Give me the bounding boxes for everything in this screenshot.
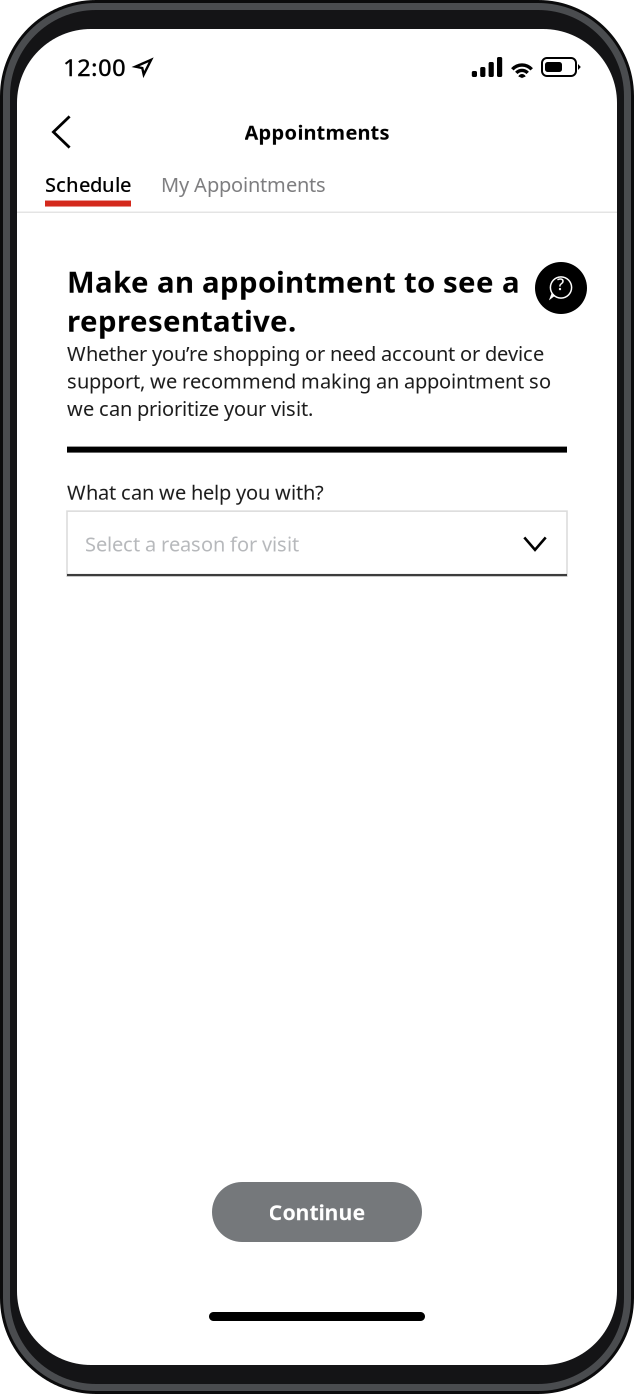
staticText: My Appointments [161,171,326,197]
button[interactable]: Back [17,104,93,160]
staticText: Schedule [45,171,131,197]
button[interactable]: My Appointments [161,171,326,206]
staticText: 12:00 [63,51,126,83]
staticText: Appointments [244,119,389,145]
button[interactable]: Help [535,262,587,314]
staticText: ? [557,273,564,295]
staticText: What can we help you with? [67,479,324,505]
button[interactable]: Continue [212,1182,422,1242]
staticText: Continue [268,1198,365,1226]
button[interactable]: Select a reason for visit [67,511,567,576]
staticText: Select a reason for visit [85,530,299,557]
staticText: Whether you’re shopping or need account … [67,340,551,422]
button[interactable]: Schedule [45,171,131,206]
staticText: Make an appointment to see a representat… [67,262,520,340]
